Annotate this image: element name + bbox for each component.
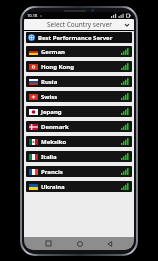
- staticText: Jepang: [41, 108, 62, 116]
- staticText: Rusia: [41, 78, 58, 86]
- button[interactable]: Recents: [42, 237, 55, 250]
- button[interactable]: Italia: [26, 151, 132, 162]
- button[interactable]: Rusia: [26, 76, 132, 87]
- staticText: Swiss: [41, 93, 58, 101]
- button[interactable]: Meksiko: [26, 136, 132, 147]
- staticText: Meksiko: [41, 138, 67, 146]
- staticText: Hong Kong: [41, 63, 75, 71]
- button[interactable]: Home: [73, 237, 86, 250]
- button[interactable]: Denmark: [26, 121, 132, 132]
- button[interactable]: Jepang: [26, 106, 132, 117]
- button[interactable]: Select Country server: [24, 19, 134, 30]
- button[interactable]: Back: [103, 237, 116, 250]
- button[interactable]: Swiss: [26, 91, 132, 102]
- button[interactable]: Hong Kong: [26, 61, 132, 72]
- button[interactable]: Best Performance Server: [26, 32, 132, 43]
- button[interactable]: Ukraina: [26, 181, 132, 192]
- staticText: Select Country server: [47, 20, 112, 29]
- staticText: Best Performance Server: [38, 34, 113, 42]
- staticText: German: [41, 48, 65, 56]
- staticText: 10.18: [27, 13, 38, 18]
- button[interactable]: Expand: [122, 20, 131, 29]
- button[interactable]: Prancis: [26, 166, 132, 177]
- staticText: Italia: [41, 153, 57, 161]
- staticText: Denmark: [41, 123, 69, 131]
- staticText: Prancis: [41, 168, 63, 176]
- staticText: Ukraina: [41, 183, 65, 191]
- button[interactable]: German: [26, 46, 132, 57]
